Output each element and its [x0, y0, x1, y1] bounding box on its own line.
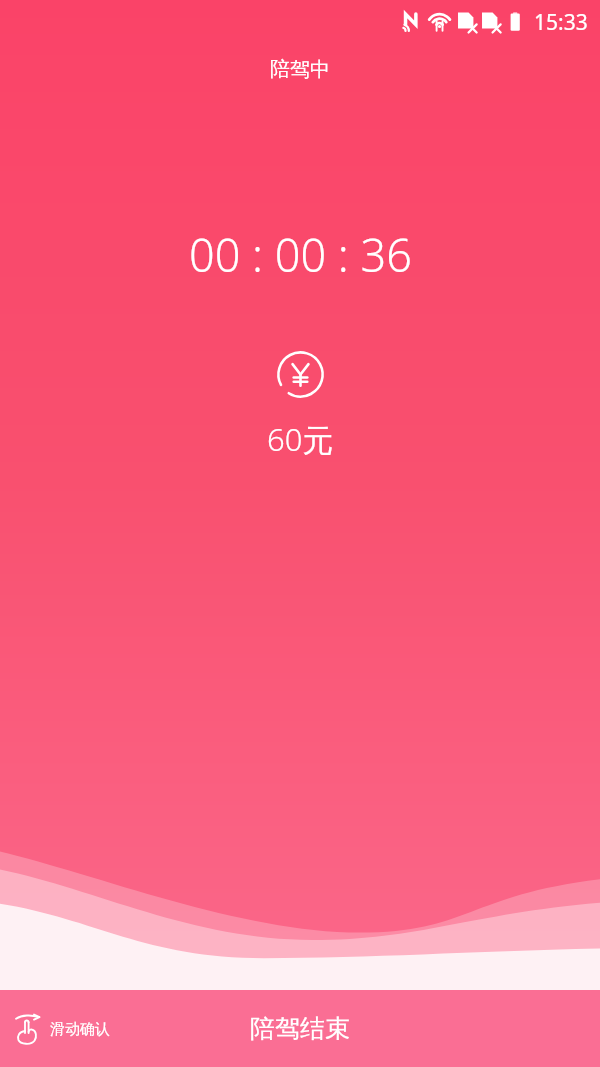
staticText: 陪驾中	[270, 57, 330, 82]
staticText: 陪驾结束	[250, 1013, 350, 1044]
button[interactable]: 陪驾结束	[0, 990, 600, 1067]
staticText: 00 : 00 : 36	[189, 224, 412, 285]
other: Slide to confirm	[13, 1012, 43, 1046]
staticText: 60元	[267, 418, 334, 460]
staticText: 15:33	[534, 8, 588, 37]
staticText: 滑动确认	[50, 1020, 110, 1039]
